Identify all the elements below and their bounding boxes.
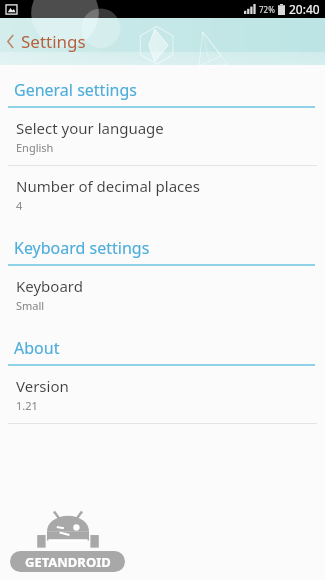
button[interactable]: Number of decimal places (0, 166, 325, 223)
staticText: Version (16, 376, 69, 396)
other: Back (7, 35, 14, 48)
staticText: About (14, 337, 60, 359)
staticText: 4 (16, 198, 23, 213)
staticText: GETANDROID (25, 553, 111, 571)
button[interactable]: Back (0, 24, 98, 59)
staticText: Select your language (16, 118, 164, 138)
staticText: Keyboard settings (14, 237, 150, 259)
staticText: General settings (14, 79, 137, 101)
button[interactable]: Version (0, 366, 325, 423)
button[interactable]: Select your language (0, 108, 325, 165)
staticText: Number of decimal places (16, 176, 200, 196)
staticText: 20:40 (289, 1, 320, 17)
staticText: English (16, 140, 54, 155)
button[interactable]: Keyboard (0, 266, 325, 323)
staticText: Keyboard (16, 276, 83, 296)
staticText: Small (16, 298, 45, 313)
staticText: 1.21 (16, 398, 38, 413)
staticText: Settings (21, 30, 86, 53)
staticText: 72% (259, 4, 275, 15)
